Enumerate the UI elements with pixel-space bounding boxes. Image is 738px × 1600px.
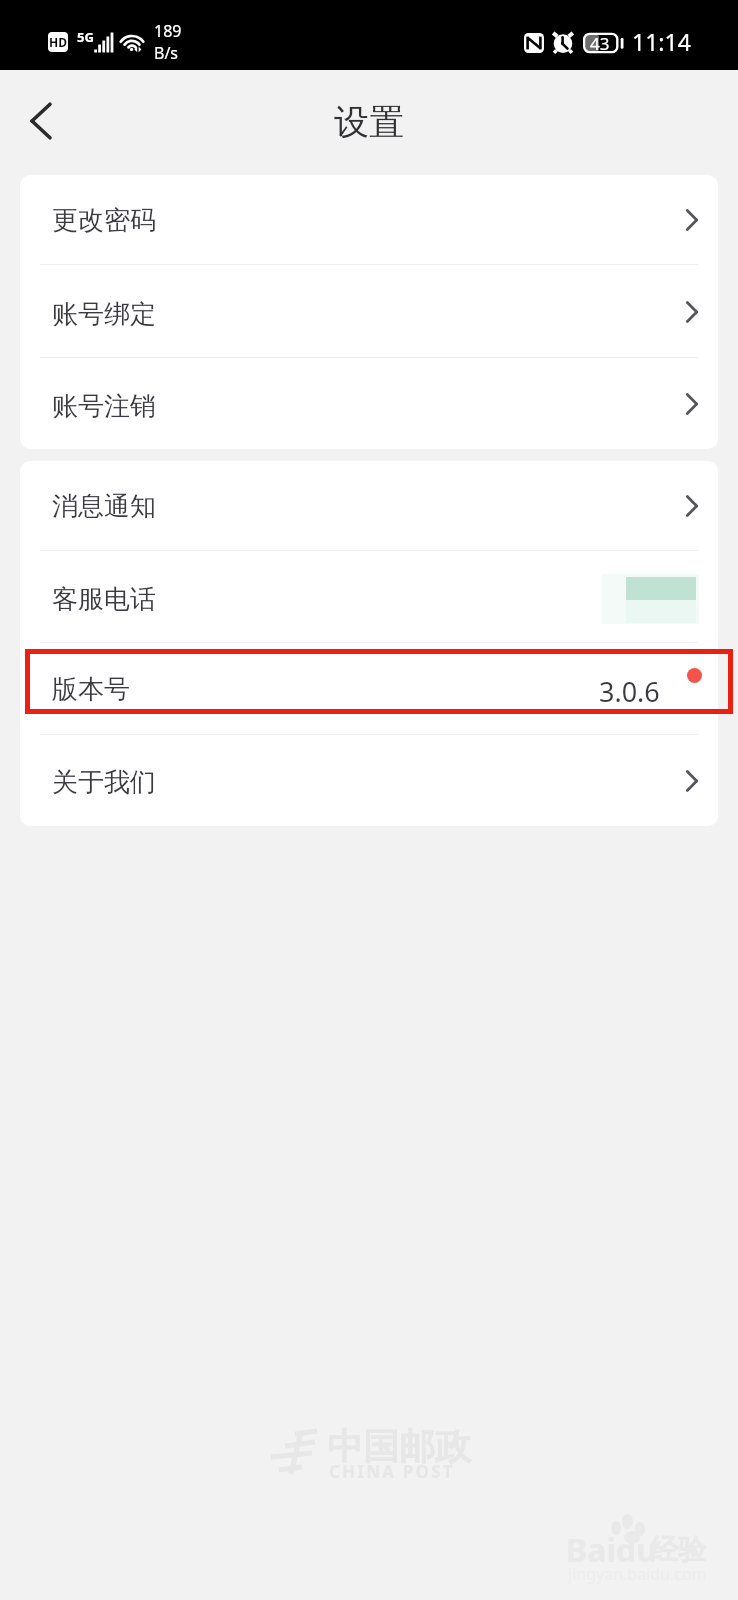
- button[interactable]: 账号注销: [20, 358, 718, 449]
- staticText: 189: [154, 20, 182, 42]
- staticText: 更改密码: [52, 204, 156, 237]
- staticText: 版本号: [52, 673, 130, 706]
- staticText: 11:14: [632, 26, 691, 57]
- staticText: B/s: [154, 42, 179, 64]
- staticText: CHINA POST: [329, 1460, 455, 1483]
- staticText: 设置: [334, 100, 404, 144]
- button[interactable]: 更改密码: [20, 175, 718, 265]
- staticText: 43: [590, 32, 610, 54]
- button[interactable]: 账号绑定: [20, 265, 718, 358]
- button[interactable]: Back: [10, 90, 72, 152]
- staticText: 经验: [650, 1532, 706, 1567]
- staticText: 账号注销: [52, 390, 156, 423]
- staticText: 消息通知: [52, 490, 156, 523]
- staticText: 中国邮政: [327, 1424, 471, 1469]
- staticText: 3.0.6: [599, 673, 660, 710]
- staticText: 关于我们: [52, 766, 156, 799]
- staticText: HD: [49, 34, 67, 50]
- staticText: 账号绑定: [52, 298, 156, 331]
- button[interactable]: 关于我们: [20, 735, 718, 826]
- button[interactable]: 客服电话: [20, 551, 718, 643]
- staticText: Baidu: [566, 1528, 658, 1572]
- button[interactable]: 消息通知: [20, 461, 718, 551]
- staticText: 客服电话: [52, 583, 156, 616]
- button[interactable]: 版本号: [20, 643, 718, 735]
- staticText: 5G: [77, 28, 94, 46]
